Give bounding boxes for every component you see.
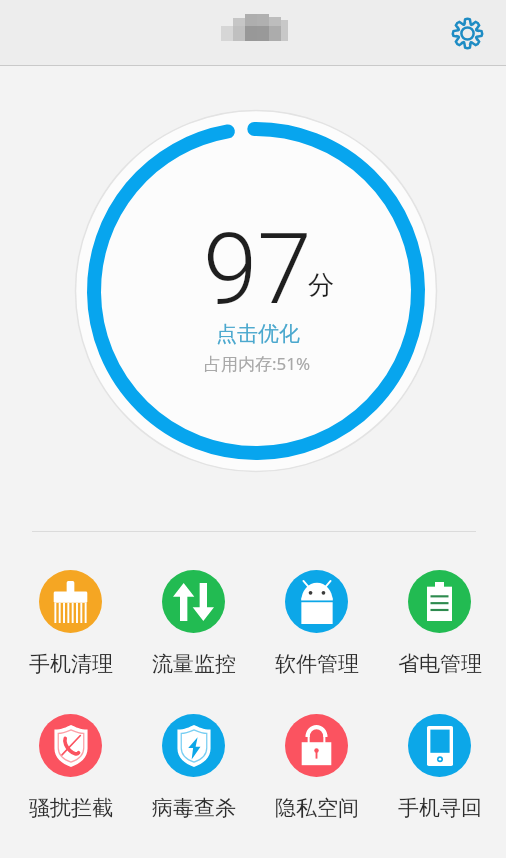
button[interactable]: 省电管理 [378, 554, 501, 693]
staticText: 分 [308, 269, 334, 302]
staticText: 病毒查杀 [152, 795, 236, 821]
button[interactable]: 流量监控 [132, 554, 255, 693]
staticText: 手机寻回 [398, 795, 482, 821]
staticText: 占用内存:51% [204, 352, 311, 375]
staticText: 97 [203, 212, 312, 327]
staticText: 软件管理 [275, 651, 359, 677]
button[interactable]: 软件管理 [255, 554, 378, 693]
button[interactable]: 点击优化 [216, 321, 300, 347]
staticText: 骚扰拦截 [29, 795, 113, 821]
button[interactable]: 病毒查杀 [132, 698, 255, 837]
staticText: 流量监控 [152, 651, 236, 677]
button[interactable]: 骚扰拦截 [9, 698, 132, 837]
staticText: 省电管理 [398, 651, 482, 677]
staticText: 点击优化 [216, 321, 300, 347]
button[interactable]: 手机清理 [9, 554, 132, 693]
staticText: 手机清理 [29, 651, 113, 677]
button[interactable]: 隐私空间 [255, 698, 378, 837]
button[interactable]: 手机寻回 [378, 698, 501, 837]
button[interactable]: Settings [445, 11, 489, 55]
staticText: 隐私空间 [275, 795, 359, 821]
